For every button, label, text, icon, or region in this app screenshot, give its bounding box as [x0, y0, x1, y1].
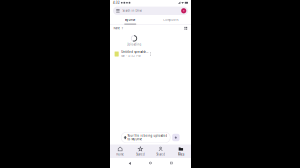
staticText: Home — [116, 153, 124, 156]
staticText: My Drive — [125, 18, 136, 22]
button[interactable]: Name — [113, 24, 123, 32]
staticText: Search in Drive — [122, 9, 142, 12]
staticText: Uploading — [126, 43, 141, 46]
button[interactable]: Recent apps — [170, 162, 172, 164]
button[interactable]: My Drive — [110, 16, 150, 24]
button[interactable]: Home — [149, 162, 152, 164]
staticText: Files — [178, 153, 184, 156]
staticText: Starred — [136, 153, 145, 156]
staticText: 4:32 — [113, 1, 120, 4]
button[interactable]: Switch to grid view — [184, 24, 188, 32]
button[interactable]: Untitled spreadsheet — [110, 49, 191, 58]
button[interactable]: Home — [110, 144, 130, 158]
button[interactable]: Back — [128, 162, 131, 164]
button[interactable]: Computers — [150, 16, 191, 24]
button[interactable]: Files — [171, 144, 191, 158]
button[interactable]: Search in Drive — [113, 7, 188, 15]
staticText: Computers — [163, 18, 178, 22]
button[interactable]: Show upload details — [172, 134, 179, 141]
button[interactable]: Shared — [150, 144, 171, 158]
button[interactable]: Starred — [130, 144, 150, 158]
staticText: Name — [113, 26, 120, 30]
staticText: Me · 4:32 PM — [121, 54, 140, 58]
staticText: ↑ — [121, 27, 123, 30]
staticText: Your file is being uploaded to My Drive — [127, 134, 167, 141]
staticText: Shared — [156, 153, 165, 156]
staticText: Untitled spreadsheet — [121, 50, 149, 54]
